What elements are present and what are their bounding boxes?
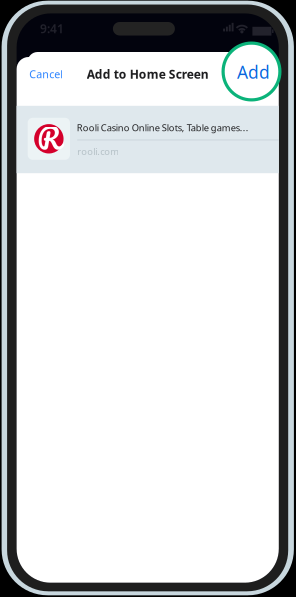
staticText: Add to Home Screen	[87, 66, 209, 82]
button[interactable]: Cancel	[29, 57, 81, 91]
staticText: Add	[237, 60, 270, 83]
staticText: rooli.com	[77, 145, 119, 158]
staticText: Cancel	[29, 67, 63, 81]
staticText: 9:41	[40, 21, 64, 37]
staticText: R	[37, 115, 60, 162]
staticText: Rooli Casino Online Slots, Table games..…	[77, 121, 249, 134]
button[interactable]: Add	[221, 41, 281, 101]
